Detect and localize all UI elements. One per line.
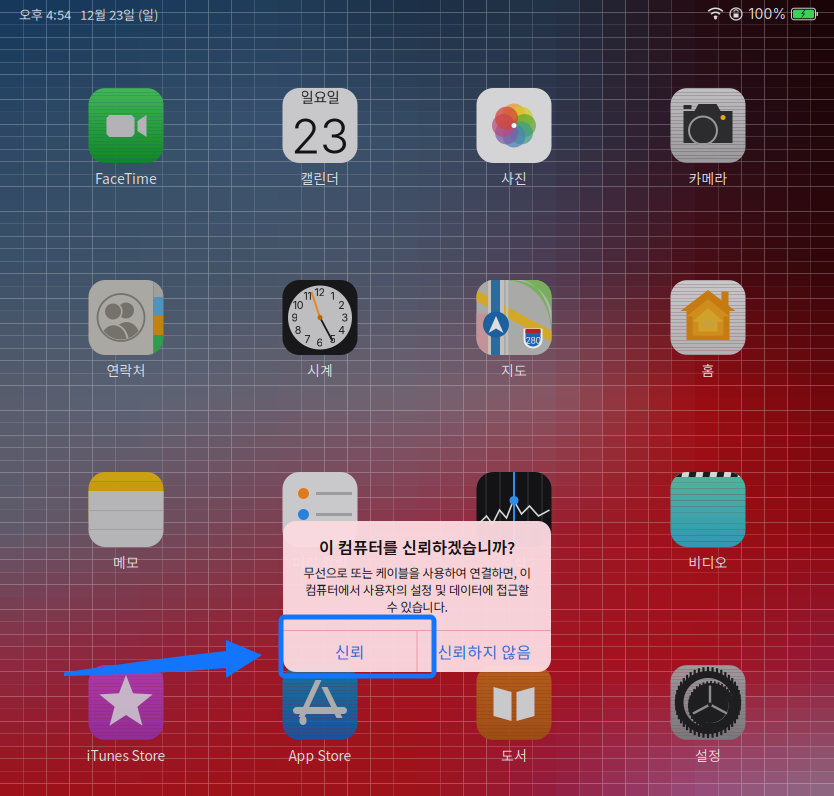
- button[interactable]: 280: [417, 280, 611, 380]
- button[interactable]: 메모: [29, 472, 223, 572]
- button[interactable]: iTunes Store: [29, 665, 223, 765]
- staticText: 시계: [307, 360, 333, 380]
- button[interactable]: 홈: [611, 280, 805, 380]
- staticText: 무선으로 또는 케이블을 사용하여 연결하면, 이: [303, 564, 530, 581]
- staticText: 10: [293, 298, 304, 311]
- button[interactable]: 설정: [611, 665, 805, 765]
- button[interactable]: FaceTime: [29, 88, 223, 188]
- staticText: 연락처: [106, 360, 145, 380]
- button[interactable]: 연락처: [29, 280, 223, 380]
- staticText: 신뢰: [335, 640, 365, 663]
- staticText: 6: [316, 336, 323, 349]
- staticText: 8: [295, 323, 302, 336]
- staticText: 23: [291, 107, 349, 165]
- button[interactable]: 카메라: [611, 88, 805, 188]
- staticText: 1: [330, 289, 334, 302]
- staticText: 수 있습니다.: [386, 598, 447, 615]
- staticText: 주식: [501, 552, 527, 572]
- staticText: 12: [314, 286, 325, 299]
- staticText: 280: [525, 335, 540, 346]
- staticText: FaceTime: [95, 168, 157, 188]
- staticText: 카메라: [688, 168, 727, 188]
- button[interactable]: 일요일: [223, 88, 417, 188]
- staticText: 신뢰하지 않음: [437, 640, 531, 663]
- staticText: 홈: [701, 360, 714, 380]
- staticText: 11: [303, 289, 311, 302]
- staticText: 설정: [695, 745, 721, 765]
- button[interactable]: 신뢰: [283, 631, 416, 672]
- staticText: 메모: [113, 552, 139, 572]
- staticText: 9: [291, 311, 298, 324]
- staticText: App Store: [288, 745, 351, 765]
- staticText: 미리 알림: [292, 552, 347, 572]
- button[interactable]: 도서: [417, 665, 611, 765]
- staticText: 지도: [501, 360, 527, 380]
- button[interactable]: 주식: [417, 472, 611, 572]
- staticText: 이 컴퓨터를 신뢰하겠습니까?: [319, 535, 515, 559]
- staticText: 7: [304, 333, 310, 346]
- staticText: iTunes Store: [86, 745, 165, 765]
- button[interactable]: 신뢰하지 않음: [417, 631, 551, 672]
- staticText: 캘린더: [300, 168, 339, 188]
- staticText: 100%: [748, 5, 786, 22]
- staticText: 3: [341, 311, 348, 324]
- staticText: 12월 23일 (일): [80, 4, 158, 23]
- staticText: 2: [338, 298, 345, 311]
- staticText: 오후 4:54: [19, 4, 71, 23]
- staticText: 사진: [501, 168, 527, 188]
- staticText: 일요일: [300, 86, 339, 107]
- button[interactable]: 비디오: [611, 472, 805, 572]
- button[interactable]: 12: [223, 280, 417, 380]
- staticText: 비디오: [688, 552, 727, 572]
- button[interactable]: 미리 알림: [223, 472, 417, 572]
- button[interactable]: App Store: [223, 665, 417, 765]
- staticText: 4: [338, 323, 345, 336]
- staticText: 5: [329, 333, 335, 346]
- button[interactable]: 사진: [417, 88, 611, 188]
- staticText: 도서: [501, 745, 527, 765]
- staticText: 컴퓨터에서 사용자의 설정 및 데이터에 접근할: [305, 581, 529, 598]
